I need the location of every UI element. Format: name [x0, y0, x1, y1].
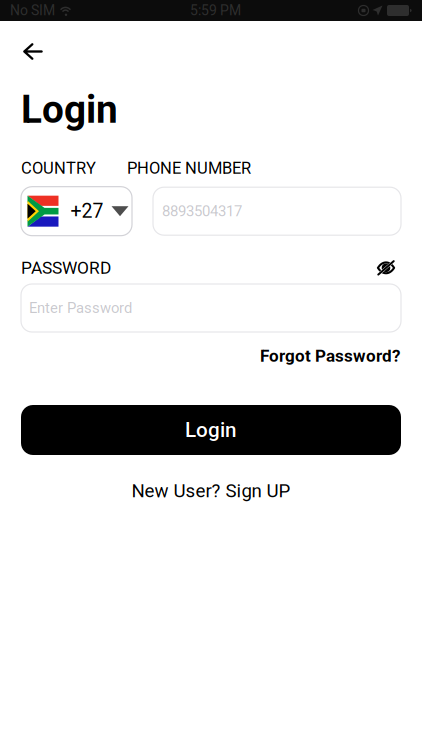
staticText: 5:59 PM [190, 2, 241, 19]
button[interactable]: Show password [377, 260, 395, 275]
button[interactable]: Login [0, 405, 422, 455]
button[interactable]: Back [0, 21, 61, 87]
staticText: 8893504317 [162, 202, 242, 220]
button[interactable]: +27 [21, 187, 132, 236]
button[interactable]: Forgot Password? [0, 346, 422, 366]
staticText: New User? Sign UP [131, 480, 290, 502]
staticText: No SIM [10, 2, 55, 19]
staticText: Forgot Password? [260, 346, 400, 366]
staticText: Login [185, 418, 237, 442]
staticText: +27 [70, 200, 103, 223]
button[interactable]: 8893504317 [153, 187, 401, 235]
button[interactable]: Enter Password [0, 284, 422, 332]
staticText: PHONE NUMBER [127, 158, 251, 178]
staticText: Enter Password [29, 299, 132, 317]
button[interactable]: New User? Sign UP [0, 480, 422, 502]
staticText: COUNTRY [21, 158, 96, 178]
staticText: PASSWORD [21, 258, 111, 278]
staticText: Login [21, 87, 118, 132]
